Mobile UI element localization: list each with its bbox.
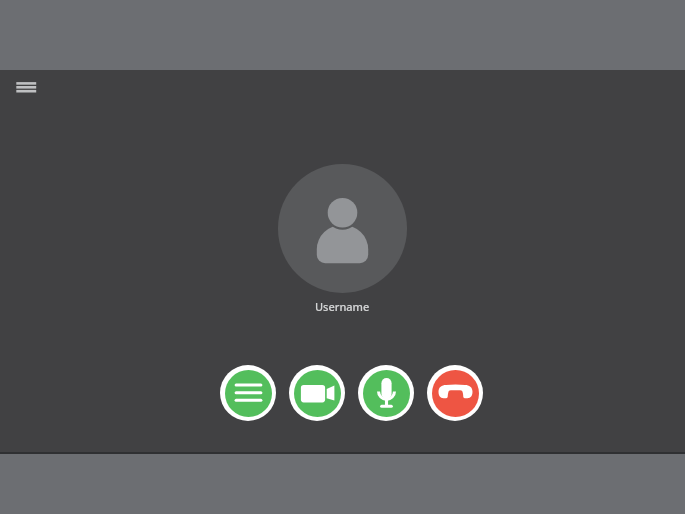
button[interactable]: Toggle video <box>289 365 345 421</box>
button[interactable]: Open keypad <box>220 365 276 421</box>
button[interactable]: End call <box>427 365 483 421</box>
button[interactable]: Mute microphone <box>358 365 414 421</box>
staticText: Username <box>315 299 370 314</box>
button[interactable]: Open navigation menu <box>12 75 40 103</box>
